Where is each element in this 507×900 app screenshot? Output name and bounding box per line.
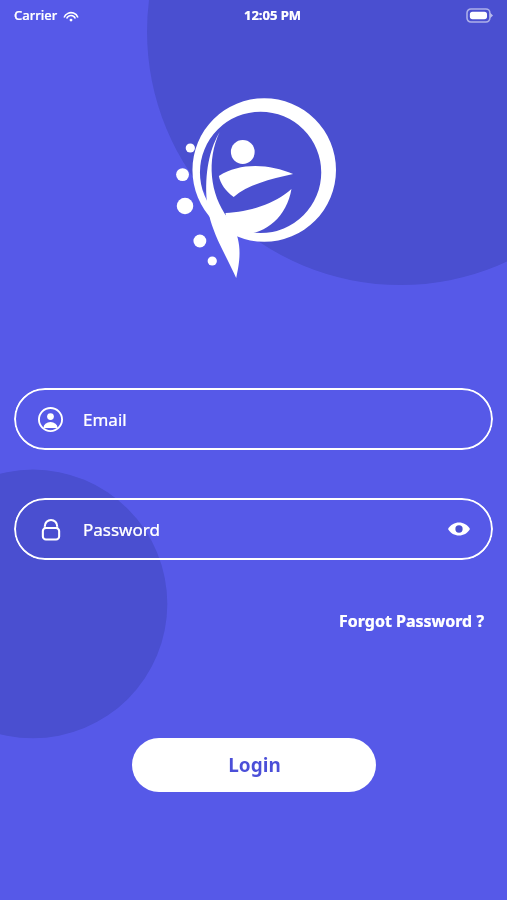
button[interactable]: Show password [437,507,481,551]
staticText: Carrier [14,6,58,24]
staticText: Login [228,752,281,778]
staticText: Forgot Password ? [339,610,485,632]
button[interactable]: Password [14,498,493,560]
staticText: 12:05 PM [244,6,302,24]
button[interactable]: Forgot Password ? [333,606,491,636]
staticText: Password [83,518,160,541]
staticText: Email [83,408,127,431]
button[interactable]: Email [14,388,493,450]
button[interactable]: Login [132,738,376,792]
